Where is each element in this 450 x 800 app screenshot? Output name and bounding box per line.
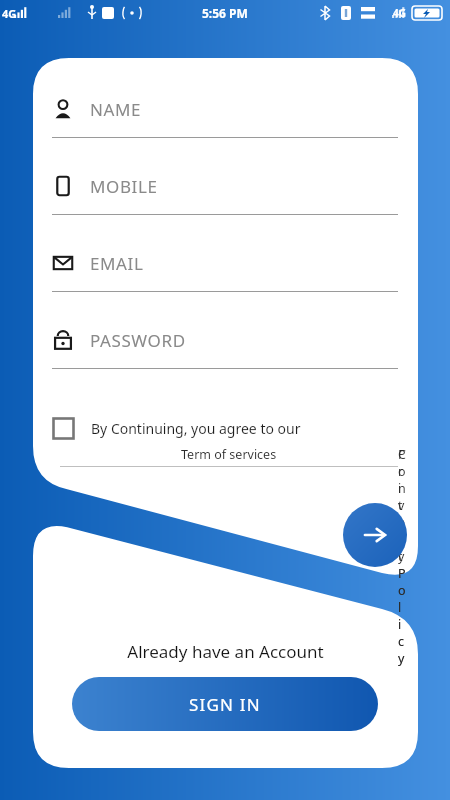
button[interactable]: Continue — [343, 503, 407, 567]
staticText: MOBILE — [90, 175, 158, 198]
button[interactable]: Term of services — [60, 446, 398, 467]
staticText: PASSWORD — [90, 329, 186, 352]
staticText: SIGN IN — [189, 693, 261, 716]
staticText: NAME — [90, 98, 142, 121]
button[interactable]: SIGN IN — [72, 677, 378, 731]
button[interactable]: MOBILE — [52, 170, 398, 247]
button[interactable]: EMAIL — [52, 247, 398, 324]
staticText: 4G — [393, 6, 406, 20]
staticText: 5:56 PM — [202, 5, 248, 21]
button[interactable]: NAME — [52, 93, 398, 170]
staticText: EMAIL — [90, 252, 144, 275]
staticText: By Continuing, you agree to our — [91, 419, 301, 438]
button[interactable]: Agree to terms checkbox — [52, 417, 75, 440]
staticText: Already have an Account — [127, 640, 324, 663]
button[interactable]: PASSWORD — [52, 324, 398, 401]
staticText: 4G — [2, 6, 17, 21]
staticText: Term of services — [181, 446, 277, 463]
